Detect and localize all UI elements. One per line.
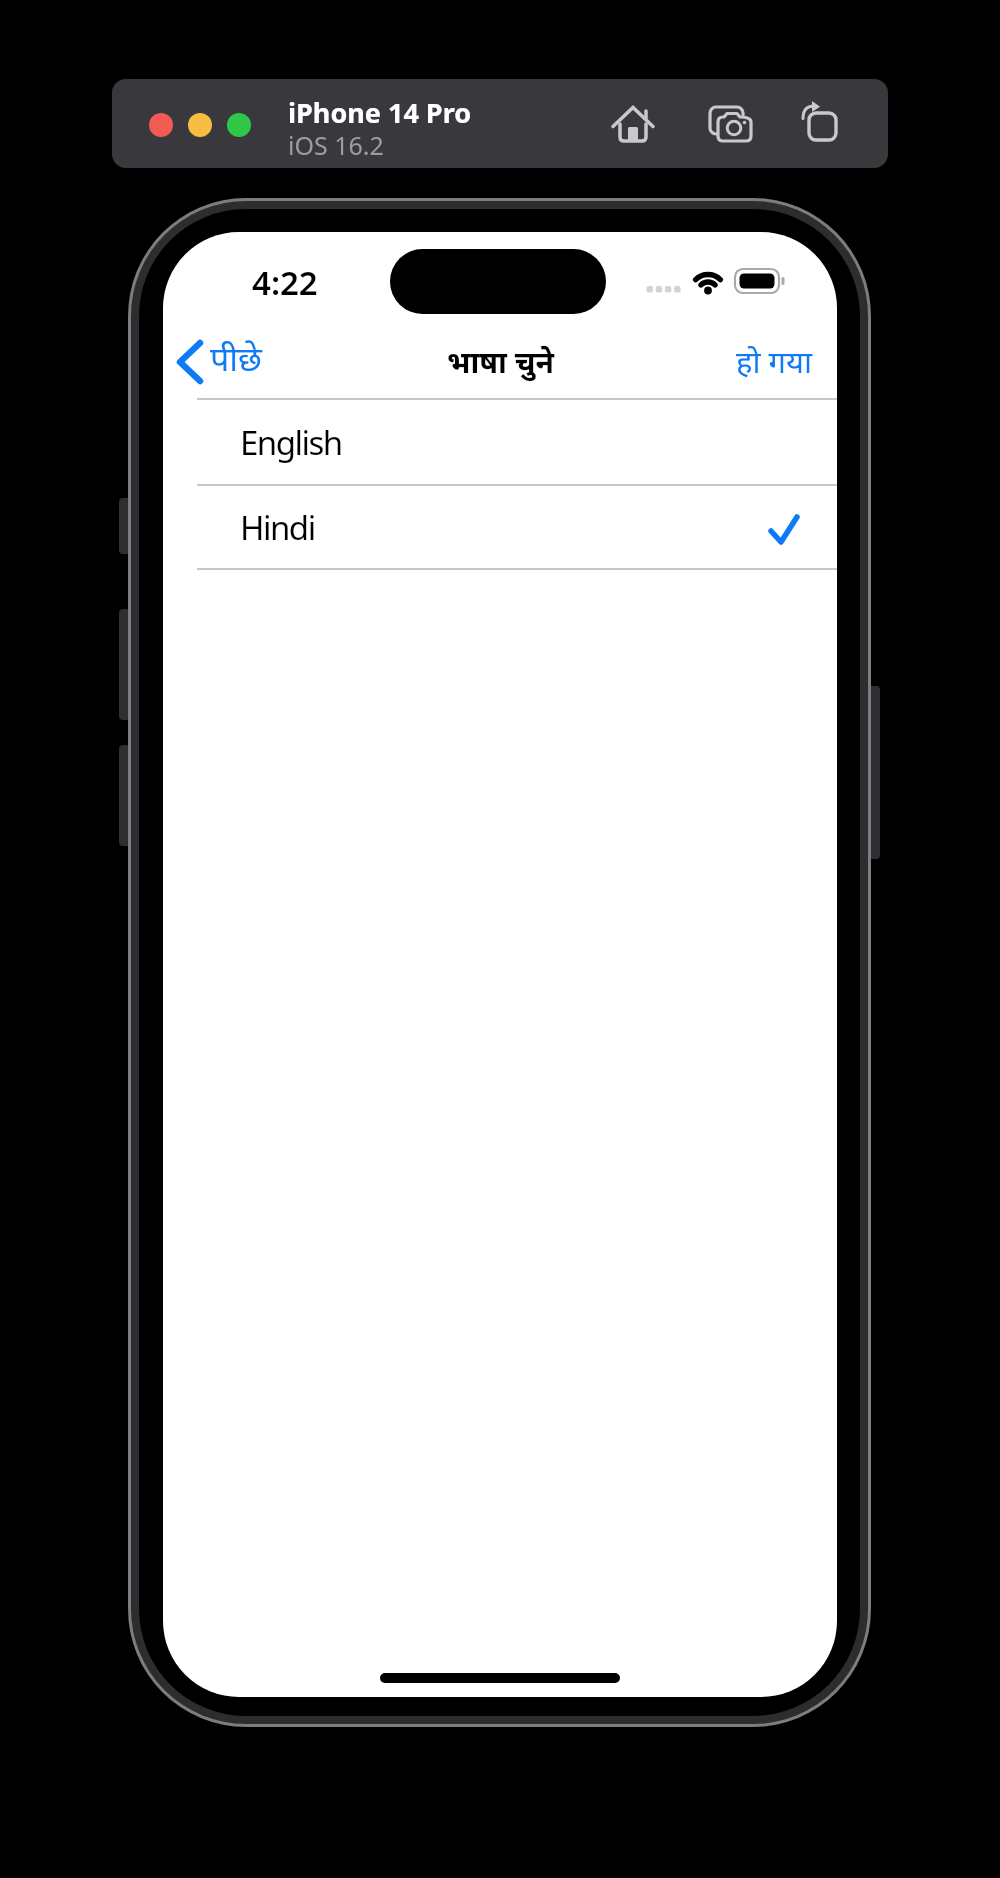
staticText: भाषा चुने [447,341,554,382]
button[interactable] [188,113,212,137]
button[interactable] [602,100,650,148]
button[interactable] [790,97,836,143]
staticText: पीछे [210,335,262,381]
button[interactable]: Hindi [163,486,837,568]
staticText: English [240,420,342,465]
staticText: 4:22 [252,260,318,305]
staticText: Hindi [240,505,315,550]
button[interactable] [697,103,747,143]
button[interactable]: English [163,400,837,484]
button[interactable] [227,113,251,137]
staticText: iPhone 14 Pro [288,94,472,131]
button[interactable]: हो गया [736,332,836,390]
button[interactable]: पीछे [169,332,289,392]
staticText: हो गया [736,340,813,382]
button[interactable] [149,113,173,137]
staticText: iOS 16.2 [288,128,384,162]
